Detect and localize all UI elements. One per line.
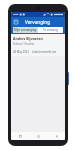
staticText: Mijn vervanging [14,28,37,32]
staticText: 28 May 2022 [13,50,29,54]
button[interactable]: Te vervang [38,27,63,33]
staticText: Vervanging [25,19,51,25]
staticText: School / Teacher [13,42,35,46]
button[interactable]: Mijn vervanging [13,27,38,33]
button[interactable]: 28 May 2022 [11,48,65,56]
button[interactable]: Recent apps [11,132,29,140]
staticText: Anders Bijvoeten [13,36,43,41]
button[interactable]: Home [29,132,47,140]
staticText: Laatst verwerkt om [32,50,57,54]
staticText: Te vervang [43,28,58,32]
button[interactable]: Back [47,132,65,140]
button[interactable]: Anders Bijvoeten [11,34,65,48]
button[interactable]: Menu [13,19,19,25]
